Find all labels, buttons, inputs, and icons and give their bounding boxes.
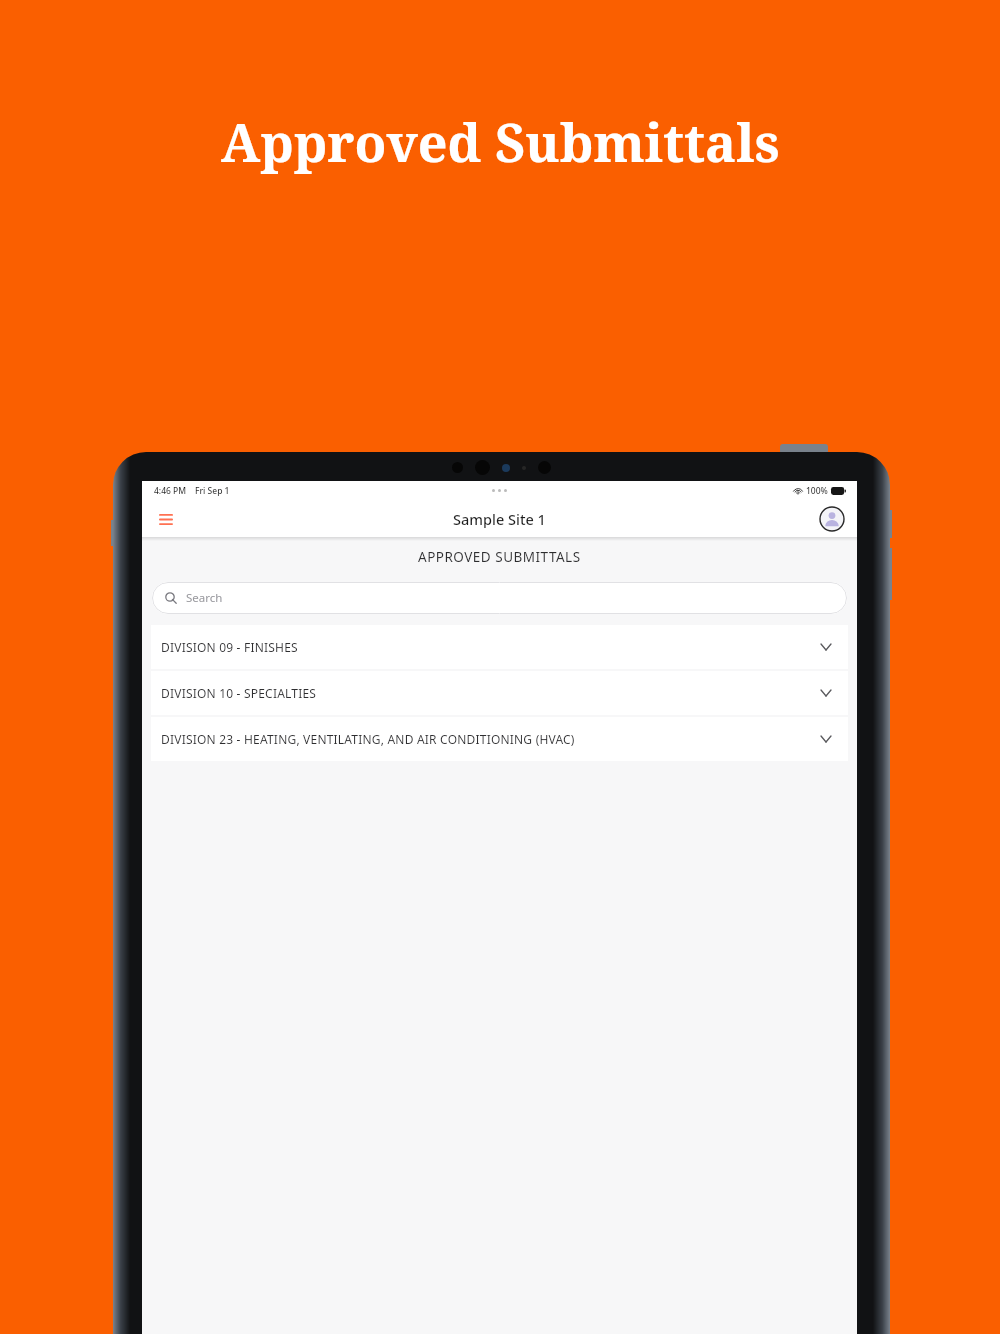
button[interactable]: Account bbox=[817, 504, 847, 534]
staticText: APPROVED SUBMITTALS bbox=[418, 548, 581, 566]
staticText: Sample Site 1 bbox=[453, 509, 546, 529]
staticText: DIVISION 09 - FINISHES bbox=[161, 639, 298, 655]
staticText: 4:46 PM bbox=[154, 485, 187, 497]
button[interactable]: DIVISION 23 - HEATING, VENTILATING, AND … bbox=[151, 717, 848, 761]
button[interactable]: DIVISION 09 - FINISHES bbox=[151, 625, 848, 669]
staticText: Search bbox=[186, 590, 223, 606]
staticText: DIVISION 10 - SPECIALTIES bbox=[161, 685, 317, 701]
staticText: 100% bbox=[806, 485, 828, 497]
staticText: Fri Sep 1 bbox=[195, 485, 230, 497]
staticText: DIVISION 23 - HEATING, VENTILATING, AND … bbox=[161, 731, 575, 747]
button[interactable]: Open menu bbox=[150, 503, 182, 535]
button[interactable]: Search bbox=[152, 582, 847, 614]
staticText: Approved Submittals bbox=[221, 106, 780, 177]
button[interactable]: DIVISION 10 - SPECIALTIES bbox=[151, 671, 848, 715]
